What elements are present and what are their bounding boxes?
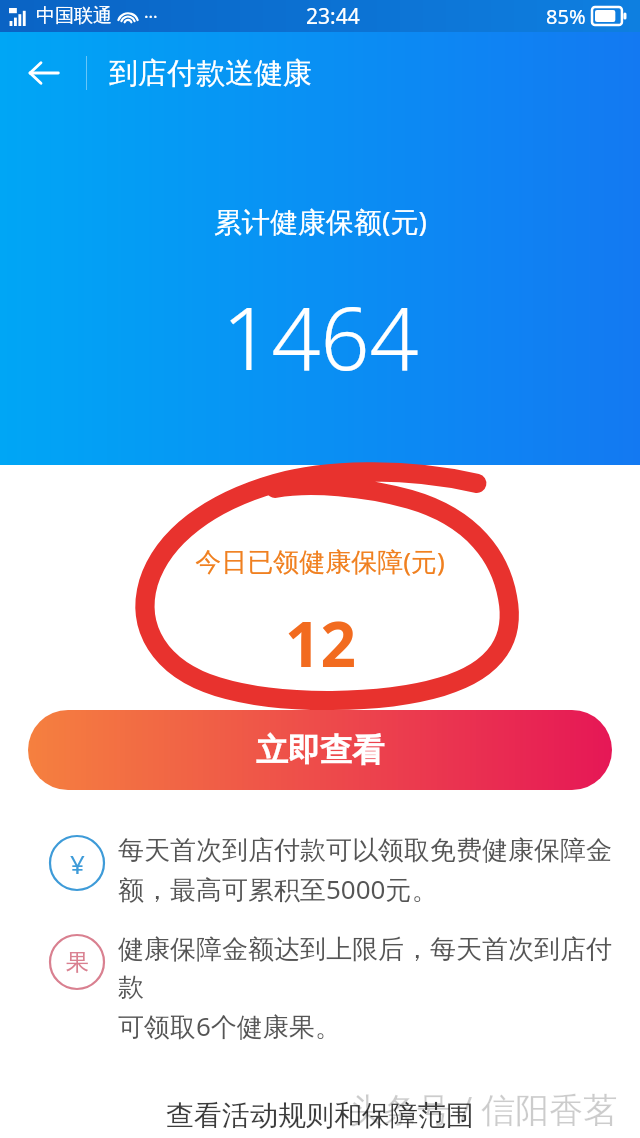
staticText: ¥ bbox=[70, 846, 85, 881]
staticText: 每天首次到店付款可以领取免费健康保障金 额，最高可累积至5000元。 bbox=[118, 834, 612, 907]
button[interactable]: 果 bbox=[0, 933, 640, 1044]
staticText: 立即查看 bbox=[256, 730, 384, 770]
staticText: 到店付款送健康 bbox=[109, 55, 312, 92]
staticText: 23:44 bbox=[306, 2, 360, 31]
button[interactable]: ¥ bbox=[0, 834, 640, 907]
button[interactable]: 立即查看 bbox=[28, 710, 612, 790]
staticText: ··· bbox=[144, 5, 158, 28]
staticText: 查看活动规则和保障范围 bbox=[166, 1098, 474, 1132]
staticText: 1464 bbox=[222, 278, 419, 395]
staticText: 12 bbox=[285, 601, 356, 685]
staticText: 果 bbox=[66, 948, 89, 977]
button[interactable]: 查看活动规则和保障范围 bbox=[154, 1092, 486, 1138]
staticText: 健康保障金额达到上限后，每天首次到店付款 可领取6个健康果。 bbox=[118, 933, 616, 1044]
staticText: 85% bbox=[546, 3, 586, 30]
staticText: 今日已领健康保障(元) bbox=[195, 543, 445, 579]
staticText: 头条号 / 信阳香茗 bbox=[349, 1086, 618, 1132]
staticText: 累计健康保额(元) bbox=[214, 202, 427, 240]
button[interactable]: Back bbox=[0, 32, 86, 114]
staticText: 中国联通 bbox=[36, 4, 112, 28]
